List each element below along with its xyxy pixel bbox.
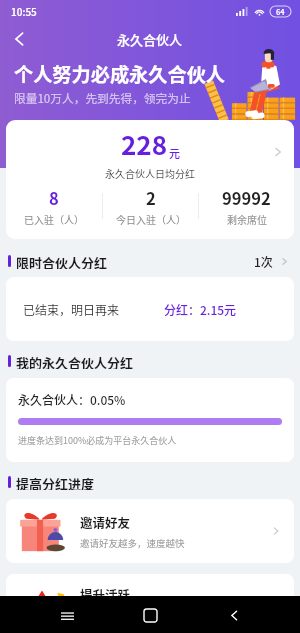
staticText: 提高分红进度 [16, 474, 95, 490]
staticText: 限量10万人，先到先得，领完为止 [14, 89, 191, 106]
staticText: 个人努力必成永久合伙人 [14, 60, 226, 88]
staticText: 元 [169, 145, 180, 161]
button[interactable]: Back [217, 598, 251, 632]
staticText: 剩余席位 [227, 212, 267, 226]
staticText: 228 [121, 125, 168, 163]
button[interactable]: 已结束，明日再来 [6, 277, 294, 341]
button[interactable]: Recent apps [50, 598, 84, 632]
staticText: 我的永久合伙人分红 [16, 353, 134, 369]
staticText: 已入驻（人） [24, 212, 84, 226]
staticText: 邀请好友 [80, 513, 131, 531]
staticText: 2 [146, 186, 156, 210]
staticText: 10:55 [11, 4, 37, 18]
staticText: 1次 [254, 253, 273, 269]
staticText: 邀请好友越多，速度越快 [80, 536, 185, 550]
staticText: 限时合伙人分红 [16, 253, 108, 269]
staticText: 永久合伙人日均分红 [105, 166, 195, 180]
staticText: 64 [276, 6, 285, 17]
staticText: 永久合伙人 [117, 30, 183, 49]
button[interactable]: 提升活跃 [6, 574, 294, 633]
staticText: 8 [49, 186, 59, 210]
staticText: 99992 [222, 186, 271, 210]
staticText: 提升活跃 [80, 585, 131, 603]
staticText: 已结束，明日再来 [23, 301, 120, 318]
button[interactable]: 228 [6, 120, 294, 184]
button[interactable]: Home [133, 598, 167, 632]
button[interactable]: 邀请好友 [6, 499, 294, 563]
staticText: 进度条达到100%必成为平台永久合伙人 [18, 434, 177, 447]
button[interactable]: Back [5, 25, 33, 53]
staticText: 今日入驻（人） [116, 212, 186, 226]
staticText: 活跃度越高，速度越快 [80, 608, 176, 622]
staticText: 永久合伙人：0.05% [18, 391, 126, 408]
staticText: 分红：2.15元 [164, 301, 237, 318]
